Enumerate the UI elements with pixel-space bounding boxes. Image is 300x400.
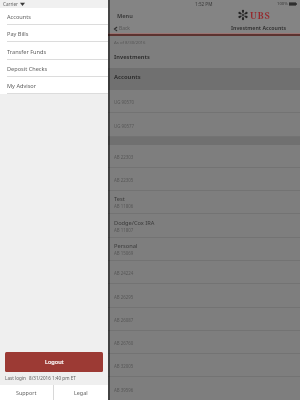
button[interactable]: AB 26295 bbox=[0, 285, 300, 308]
staticText: AB 11806 bbox=[114, 203, 134, 209]
staticText: Investment Accounts bbox=[231, 24, 287, 31]
staticText: AB 22305 bbox=[114, 177, 134, 183]
staticText: As of 8/30/2016 bbox=[114, 39, 146, 45]
staticText: Logout bbox=[45, 358, 64, 366]
staticText: AB 22303 bbox=[114, 154, 134, 160]
staticText: Back bbox=[119, 25, 130, 32]
staticText: AB 39596 bbox=[114, 387, 134, 393]
button[interactable]: Menu bbox=[117, 12, 133, 20]
staticText: 8/31/2016 1:40 pm ET bbox=[29, 375, 76, 381]
button[interactable]: Accounts bbox=[0, 8, 108, 25]
staticText: Menu bbox=[117, 12, 133, 20]
staticText: Legal bbox=[74, 389, 88, 396]
staticText: UG 90577 bbox=[114, 123, 135, 129]
button[interactable]: AB 26087 bbox=[0, 308, 300, 331]
button[interactable]: AB 26760 bbox=[0, 331, 300, 354]
button[interactable]: AB 22303 bbox=[0, 145, 300, 168]
button[interactable]: UG 90570 bbox=[0, 90, 300, 113]
button[interactable]: Back bbox=[114, 25, 130, 32]
staticText: AB 26760 bbox=[114, 340, 134, 346]
button[interactable]: Test bbox=[0, 191, 300, 214]
button[interactable]: UG 90577 bbox=[0, 114, 300, 137]
staticText: Deposit Checks bbox=[7, 65, 48, 73]
staticText: Investments bbox=[114, 53, 150, 61]
staticText: AB 24224 bbox=[114, 270, 134, 276]
staticText: AB 32005 bbox=[114, 363, 134, 369]
staticText: Transfer Funds bbox=[7, 48, 47, 56]
staticText: 1:52 PM bbox=[195, 1, 213, 7]
staticText: AB 15069 bbox=[114, 250, 134, 256]
button[interactable]: AB 24224 bbox=[0, 261, 300, 284]
staticText: 100% bbox=[277, 1, 288, 7]
staticText: Test bbox=[114, 195, 125, 203]
button[interactable]: Legal bbox=[54, 385, 108, 400]
button[interactable]: My Advisor bbox=[0, 77, 108, 94]
staticText: UBS bbox=[250, 9, 271, 22]
button[interactable]: Logout bbox=[5, 352, 103, 372]
staticText: AB 11807 bbox=[114, 227, 134, 233]
button[interactable]: Personal bbox=[0, 238, 300, 261]
staticText: Accounts bbox=[7, 13, 31, 21]
button[interactable]: Transfer Funds bbox=[0, 43, 108, 60]
staticText: Pay Bills bbox=[7, 30, 29, 38]
staticText: Dodge/Cox IRA bbox=[114, 219, 155, 227]
staticText: My Advisor bbox=[7, 82, 37, 90]
button[interactable]: Deposit Checks bbox=[0, 60, 108, 77]
button[interactable]: AB 32005 bbox=[0, 354, 300, 377]
staticText: AB 26295 bbox=[114, 294, 134, 300]
button[interactable]: AB 39596 bbox=[0, 378, 300, 400]
staticText: Personal bbox=[114, 242, 138, 250]
staticText: Support bbox=[16, 389, 37, 396]
staticText: UG 90570 bbox=[114, 99, 135, 105]
button[interactable]: Dodge/Cox IRA bbox=[0, 215, 300, 238]
staticText: Last login bbox=[5, 375, 26, 381]
button[interactable]: AB 22305 bbox=[0, 168, 300, 191]
button[interactable]: Support bbox=[0, 385, 53, 400]
button[interactable]: Pay Bills bbox=[0, 25, 108, 42]
staticText: Carrier bbox=[3, 1, 18, 7]
staticText: Accounts bbox=[114, 73, 141, 81]
staticText: AB 26087 bbox=[114, 317, 134, 323]
